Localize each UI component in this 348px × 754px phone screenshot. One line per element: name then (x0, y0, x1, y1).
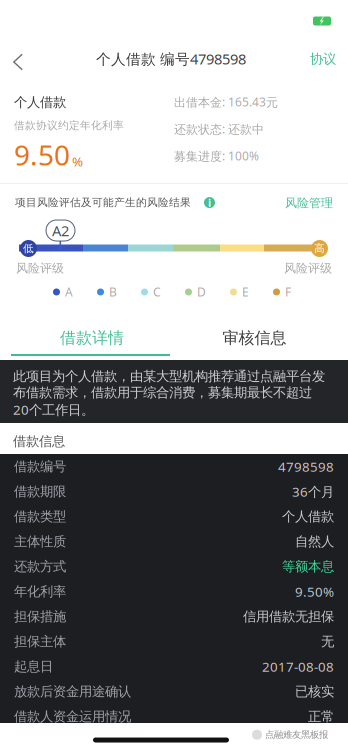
staticText: 信用借款无担保 (243, 608, 334, 625)
staticText: 年化利率 (14, 583, 66, 600)
staticText: 2017-08-08 (262, 658, 334, 675)
staticText: 点融难友黑板报 (265, 729, 328, 740)
staticText: 主体性质 (14, 533, 66, 550)
staticText: A (65, 284, 73, 300)
staticText: A2 (52, 221, 69, 240)
staticText: E (242, 284, 249, 300)
staticText: 出借本金: 165.43元 (174, 94, 278, 110)
staticText: 已核实 (295, 683, 334, 700)
staticText: 放款后资金用途确认 (14, 683, 131, 700)
staticText: 募集进度: 100% (174, 148, 259, 164)
staticText: 审核信息 (222, 328, 286, 348)
staticText: % (72, 152, 83, 170)
staticText: 36个月 (292, 483, 334, 500)
staticText: 起息日 (14, 658, 53, 675)
staticText: 高 (314, 242, 325, 255)
staticText: 担保措施 (14, 608, 66, 625)
staticText: 等额本息 (282, 558, 334, 575)
staticText: 风险管理 (285, 196, 333, 210)
staticText: 9.50% (295, 583, 334, 600)
button[interactable]: 审核信息 (184, 322, 325, 354)
staticText: 此项目为个人借款，由某大型机构推荐通过点融平台发 布借款需求，借款用于综合消费，… (13, 368, 325, 418)
staticText: 个人借款 (14, 94, 66, 110)
staticText: 借款编号 (14, 458, 66, 475)
staticText: 借款协议约定年化利率 (14, 119, 124, 132)
staticText: 风险评级 (16, 261, 64, 276)
staticText: 借款类型 (14, 508, 66, 525)
staticText: 个人借款 编号4798598 (96, 49, 246, 68)
staticText: 个人借款 (282, 508, 334, 525)
staticText: C (153, 284, 161, 300)
staticText: 无 (321, 633, 334, 650)
staticText: 还款方式 (14, 558, 66, 575)
staticText: 9.50 (14, 136, 70, 173)
button[interactable]: Back (13, 51, 43, 73)
staticText: 4798598 (278, 458, 334, 475)
staticText: 还款状态: 还款中 (174, 121, 264, 137)
staticText: 风险评级 (284, 261, 332, 276)
staticText: 担保主体 (14, 633, 66, 650)
staticText: 低 (23, 242, 34, 255)
button[interactable]: 风险管理 (280, 196, 333, 210)
button[interactable]: 协议 (296, 50, 336, 68)
button[interactable]: 借款详情 (0, 322, 184, 354)
staticText: i (208, 195, 211, 210)
staticText: F (285, 284, 291, 300)
staticText: B (109, 284, 117, 300)
staticText: D (197, 284, 206, 300)
staticText: 协议 (310, 51, 336, 67)
staticText: 借款详情 (60, 328, 124, 348)
staticText: 借款信息 (13, 433, 65, 449)
staticText: 项目风险评估及可能产生的风险结果 (15, 196, 191, 209)
staticText: 自然人 (295, 533, 334, 550)
staticText: 借款期限 (14, 483, 66, 500)
staticText: 借款人资金运用情况 (14, 708, 131, 725)
staticText: 正常 (308, 708, 334, 725)
